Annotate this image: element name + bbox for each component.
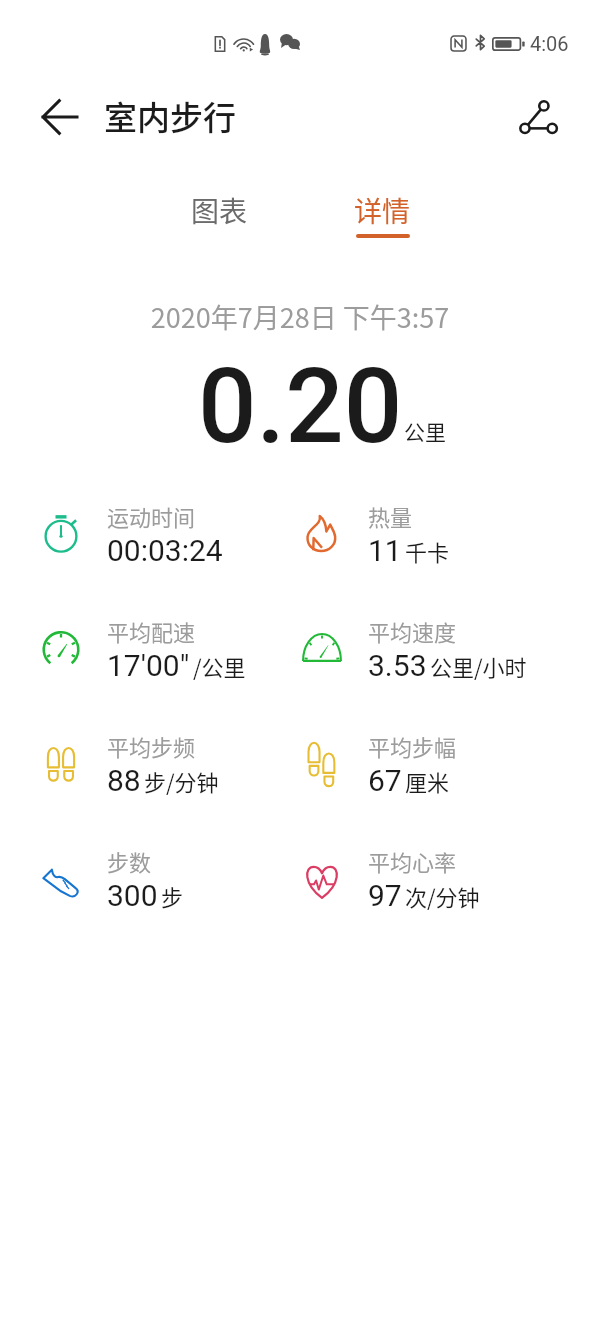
staticText: 步 [161,880,184,912]
button[interactable]: 平均步幅 [304,729,554,799]
staticText: 室内步行 [104,92,236,140]
staticText: 17'00" [107,648,190,683]
button[interactable]: Share [521,98,565,142]
staticText: 公里 [404,416,446,446]
staticText: 300 [107,878,158,913]
staticText: 厘米 [405,765,450,797]
staticText: 热量 [368,500,413,532]
staticText: 平均步幅 [368,730,457,762]
staticText: 平均速度 [368,615,457,647]
button[interactable]: 平均配速 [43,614,293,684]
staticText: 千卡 [405,535,450,567]
staticText: 67 [368,763,402,798]
button[interactable]: 平均步频 [43,729,293,799]
staticText: 11 [368,533,402,568]
staticText: /公里 [193,650,246,682]
staticText: 00:03:24 [107,533,223,568]
button[interactable]: 热量 [304,499,554,569]
button[interactable]: 平均速度 [304,614,554,684]
staticText: 步数 [107,845,152,877]
button[interactable]: 详情 [322,182,442,238]
staticText: 97 [368,878,402,913]
button[interactable]: Back [37,95,83,141]
staticText: 3.53 [368,648,427,683]
staticText: 图表 [191,190,248,231]
button[interactable]: 平均心率 [304,844,554,914]
button[interactable]: 运动时间 [43,499,293,569]
staticText: 次/分钟 [405,880,480,912]
staticText: 运动时间 [107,500,196,532]
button[interactable]: 步数 [43,844,293,914]
button[interactable]: 图表 [159,182,279,238]
staticText: 平均步频 [107,730,196,762]
staticText: 平均心率 [368,845,457,877]
staticText: 平均配速 [107,615,196,647]
staticText: 公里/小时 [430,650,527,682]
staticText: 0.20 [198,346,403,467]
staticText: 详情 [354,190,411,231]
staticText: 2020年7月28日 下午3:57 [0,297,600,336]
staticText: 4:06 [530,32,569,55]
staticText: 88 [107,763,141,798]
staticText: 步/分钟 [144,765,219,797]
